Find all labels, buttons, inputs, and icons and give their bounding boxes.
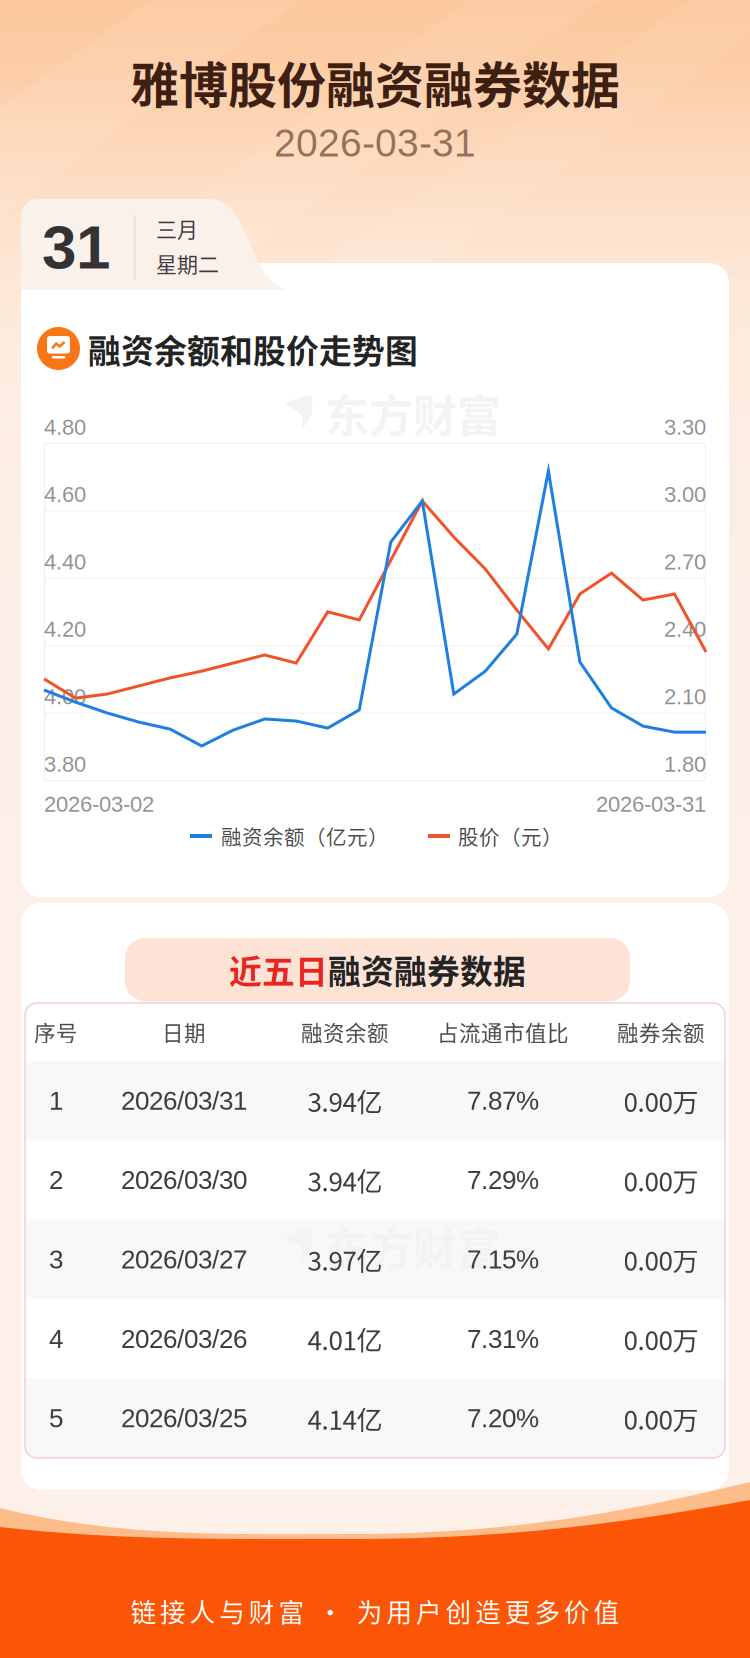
staticText: 链接人与财富 · 为用户创造更多价值 [130, 1592, 620, 1630]
staticText: 东方财富 [325, 381, 501, 445]
staticText: 3.94亿 [307, 1161, 382, 1199]
staticText: 2026-03-31 [596, 792, 706, 816]
staticText: 2.70 [664, 549, 706, 574]
staticText: 日期 [162, 1016, 206, 1047]
staticText: 4.00 [44, 684, 86, 709]
staticText: 4.20 [44, 617, 86, 641]
staticText: 31 [42, 212, 110, 282]
staticText: 3.00 [664, 482, 706, 507]
staticText: 融资余额和股价走势图 [88, 325, 418, 373]
staticText: 3.30 [664, 415, 706, 439]
staticText: 股价（元） [458, 821, 563, 851]
staticText: 0.00万 [623, 1082, 698, 1119]
staticText: 融资余额（亿元） [221, 821, 389, 851]
staticText: 3 [49, 1245, 63, 1274]
staticText: 2026/03/25 [121, 1404, 247, 1433]
staticText: 2026/03/30 [121, 1166, 247, 1195]
staticText: 4.80 [44, 415, 86, 439]
staticText: 4.40 [44, 549, 86, 574]
staticText: 2.10 [664, 684, 706, 709]
staticText: 东方财富 [325, 1214, 501, 1278]
staticText: 融资融券数据 [328, 946, 526, 993]
staticText: 三月 [156, 213, 198, 243]
staticText: 占流通市值比 [437, 1016, 569, 1047]
staticText: 7.31% [467, 1324, 539, 1353]
staticText: 7.87% [467, 1086, 539, 1115]
staticText: 3.97亿 [307, 1241, 382, 1278]
staticText: 7.20% [467, 1404, 539, 1433]
staticText: 4.01亿 [307, 1320, 382, 1358]
staticText: 融券余额 [617, 1016, 705, 1047]
staticText: 5 [49, 1404, 63, 1433]
staticText: 0.00万 [623, 1399, 698, 1437]
staticText: 7.29% [467, 1166, 539, 1195]
staticText: 雅博股份融资融券数据 [130, 46, 620, 117]
staticText: 0.00万 [623, 1161, 698, 1199]
staticText: 2026-03-02 [44, 792, 154, 816]
staticText: 2.40 [664, 617, 706, 641]
staticText: 7.15% [467, 1245, 539, 1274]
staticText: 3.94亿 [307, 1082, 382, 1119]
staticText: 2026-03-31 [274, 121, 476, 165]
staticText: 2026/03/27 [121, 1245, 247, 1274]
staticText: 2 [49, 1166, 63, 1195]
staticText: 4 [49, 1324, 63, 1353]
staticText: 融资余额 [301, 1016, 389, 1047]
staticText: 3.80 [44, 752, 86, 776]
staticText: 4.14亿 [307, 1399, 382, 1437]
staticText: 星期二 [156, 248, 219, 278]
staticText: 4.60 [44, 482, 86, 507]
staticText: 0.00万 [623, 1241, 698, 1278]
staticText: 2026/03/31 [121, 1086, 247, 1115]
staticText: 2026/03/26 [121, 1324, 247, 1353]
staticText: 0.00万 [623, 1320, 698, 1358]
staticText: 近五日 [229, 946, 328, 993]
staticText: 序号 [34, 1016, 78, 1047]
staticText: 1.80 [664, 752, 706, 776]
staticText: 1 [49, 1086, 63, 1115]
